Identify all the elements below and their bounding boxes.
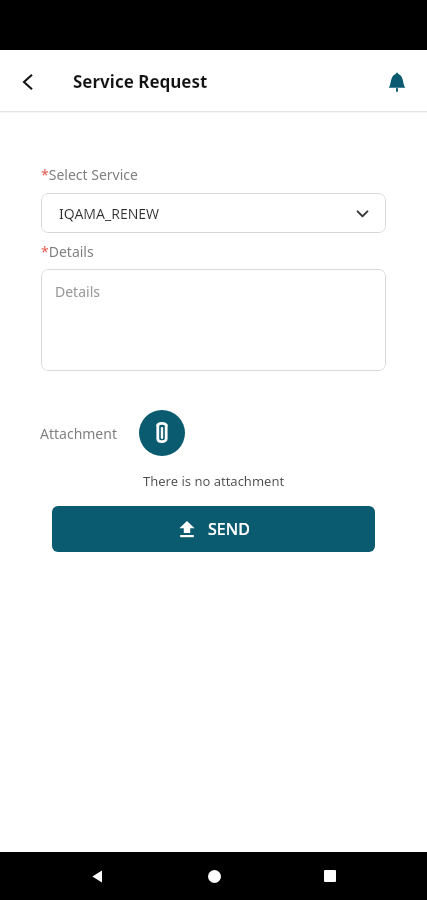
staticText: Service Request [73,70,208,93]
button[interactable]: Recent apps [310,856,350,896]
button[interactable]: Back [6,60,50,104]
button[interactable]: Add attachment [139,410,185,456]
button[interactable]: SEND [52,506,375,552]
button[interactable]: Details [41,269,386,371]
staticText: Attachment [40,424,117,443]
button[interactable]: Back [77,856,117,896]
staticText: *Select Service [41,165,138,184]
button[interactable]: IQAMA_RENEW [41,193,386,233]
staticText: SEND [208,518,250,540]
staticText: *Details [41,242,94,261]
staticText: IQAMA_RENEW [59,204,160,223]
button[interactable]: Notifications [375,60,419,104]
staticText: There is no attachment [143,472,285,490]
button[interactable]: Home [194,856,234,896]
staticText: Details [55,282,100,301]
